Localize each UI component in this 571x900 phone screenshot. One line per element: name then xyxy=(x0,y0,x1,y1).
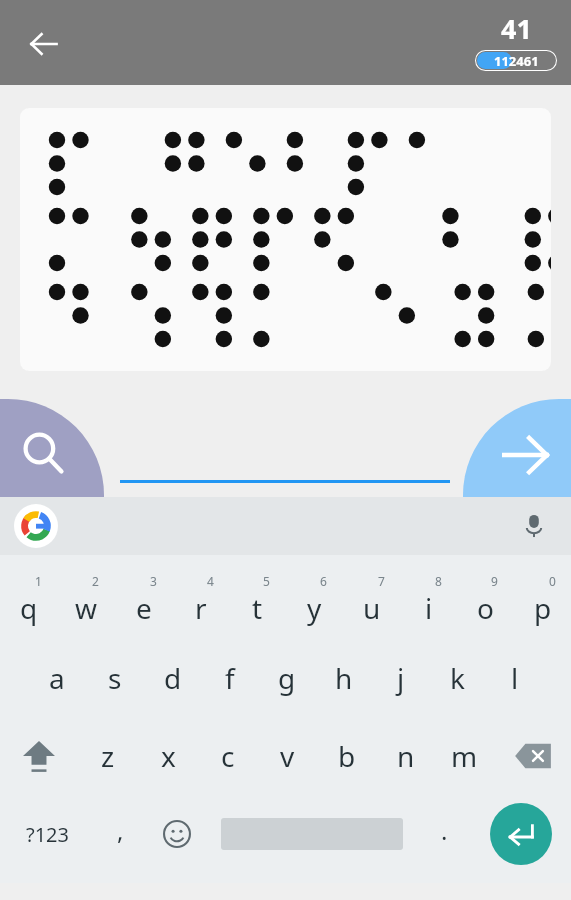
staticText: u xyxy=(363,589,381,627)
button[interactable]: 6 xyxy=(286,561,343,639)
staticText: o xyxy=(477,589,494,627)
staticText: v xyxy=(280,737,295,775)
button[interactable]: v xyxy=(258,717,317,795)
staticText: w xyxy=(75,589,98,627)
staticText: h xyxy=(335,659,353,697)
button[interactable]: , xyxy=(94,795,147,873)
button[interactable]: z xyxy=(78,717,138,795)
staticText: f xyxy=(225,659,235,697)
staticText: 4 xyxy=(207,573,214,589)
staticText: 2 xyxy=(92,573,99,589)
button[interactable]: c xyxy=(198,717,258,795)
button[interactable]: Backspace xyxy=(494,717,571,795)
staticText: 112461 xyxy=(494,52,539,70)
button[interactable]: 5 xyxy=(229,561,286,639)
button[interactable]: f xyxy=(201,639,258,717)
button[interactable]: ?123 xyxy=(0,795,94,873)
button[interactable]: h xyxy=(315,639,372,717)
button[interactable]: n xyxy=(376,717,435,795)
button[interactable]: Space xyxy=(206,795,418,873)
button[interactable]: Voice input xyxy=(513,505,555,547)
button[interactable]: 7 xyxy=(343,561,400,639)
staticText: i xyxy=(425,589,433,627)
button[interactable]: j xyxy=(372,639,429,717)
button[interactable]: l xyxy=(486,639,543,717)
staticText: 6 xyxy=(320,573,327,589)
staticText: m xyxy=(451,737,478,775)
button[interactable]: 4 xyxy=(172,561,229,639)
button[interactable]: Enter xyxy=(490,803,552,865)
staticText: b xyxy=(338,737,356,775)
staticText: g xyxy=(278,659,296,697)
staticText: s xyxy=(108,659,122,697)
button[interactable]: Submit xyxy=(463,399,571,497)
button[interactable]: d xyxy=(144,639,201,717)
staticText: y xyxy=(307,589,322,627)
button[interactable]: a xyxy=(28,639,86,717)
staticText: 3 xyxy=(150,573,157,589)
staticText: 0 xyxy=(549,573,556,589)
button[interactable]: s xyxy=(86,639,144,717)
button[interactable]: Emoji xyxy=(147,795,206,873)
staticText: l xyxy=(511,659,519,697)
button[interactable]: 2 xyxy=(58,561,115,639)
staticText: e xyxy=(136,589,152,627)
staticText: n xyxy=(397,737,415,775)
button[interactable]: 1 xyxy=(0,561,58,639)
staticText: , xyxy=(117,814,124,847)
staticText: . xyxy=(441,814,448,847)
staticText: x xyxy=(161,737,176,775)
staticText: 7 xyxy=(378,573,385,589)
button[interactable]: k xyxy=(429,639,486,717)
button[interactable]: b xyxy=(317,717,376,795)
staticText: z xyxy=(101,737,115,775)
button[interactable]: Shift xyxy=(0,717,78,795)
staticText: k xyxy=(450,659,465,697)
staticText: j xyxy=(397,659,405,697)
button[interactable]: Search xyxy=(0,399,104,497)
staticText: c xyxy=(221,737,235,775)
staticText: 41 xyxy=(501,10,532,47)
staticText: q xyxy=(20,589,38,627)
button[interactable]: 8 xyxy=(400,561,457,639)
staticText: r xyxy=(195,589,207,627)
staticText: 8 xyxy=(435,573,442,589)
button[interactable]: Back xyxy=(18,18,70,70)
button[interactable]: g xyxy=(258,639,315,717)
staticText: ?123 xyxy=(26,821,69,848)
button[interactable]: 3 xyxy=(115,561,172,639)
button[interactable]: . xyxy=(418,795,471,873)
button[interactable]: x xyxy=(138,717,198,795)
staticText: a xyxy=(49,659,65,697)
staticText: t xyxy=(252,589,263,627)
staticText: 9 xyxy=(491,573,498,589)
staticText: 1 xyxy=(35,573,42,589)
button[interactable]: 9 xyxy=(457,561,514,639)
staticText: p xyxy=(534,589,552,627)
button[interactable]: Google xyxy=(14,504,58,548)
staticText: d xyxy=(164,659,182,697)
button[interactable]: m xyxy=(435,717,494,795)
button[interactable]: 0 xyxy=(514,561,571,639)
staticText: 5 xyxy=(263,573,270,589)
